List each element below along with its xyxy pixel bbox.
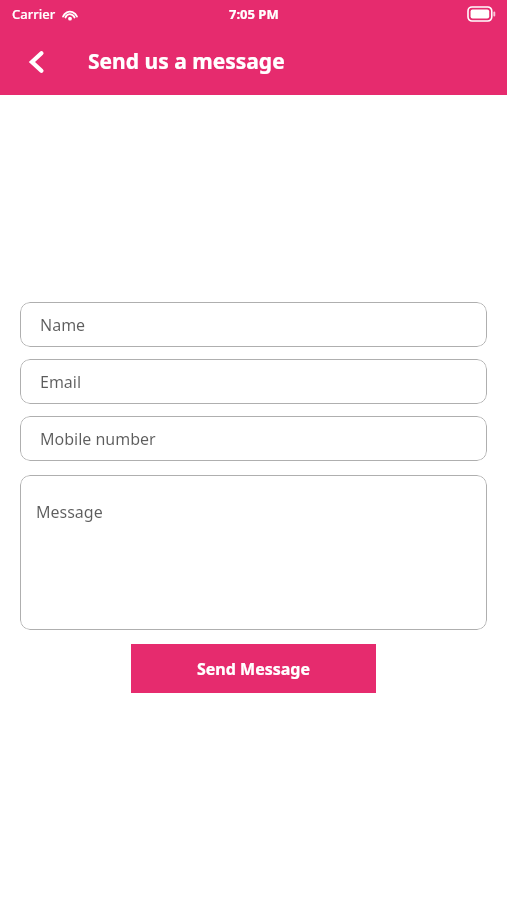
button[interactable]: Name — [20, 302, 487, 347]
button[interactable]: Send Message — [131, 644, 376, 693]
staticText: Message — [36, 501, 103, 523]
staticText: Mobile number — [40, 428, 156, 450]
button[interactable]: Back — [10, 35, 64, 89]
staticText: Email — [40, 371, 82, 393]
staticText: Send Message — [197, 658, 310, 680]
staticText: 7:05 PM — [229, 5, 279, 23]
staticText: Carrier — [12, 5, 56, 23]
button[interactable]: Email — [20, 359, 487, 404]
staticText: Send us a message — [88, 47, 285, 76]
staticText: Name — [40, 314, 86, 336]
button[interactable]: Mobile number — [20, 416, 487, 461]
button[interactable]: Message — [20, 475, 487, 630]
